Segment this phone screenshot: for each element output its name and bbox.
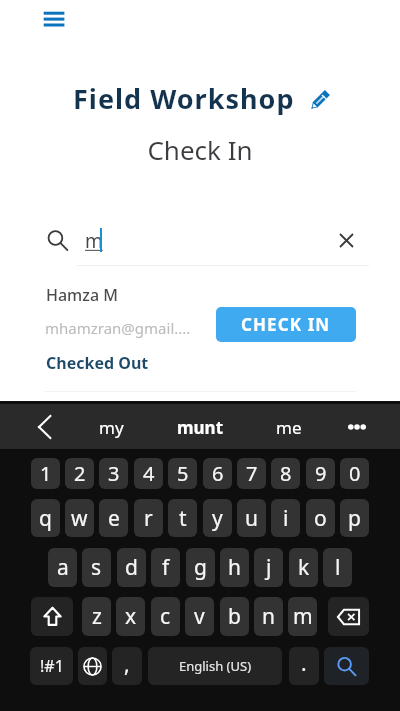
staticText: h	[228, 553, 241, 582]
button[interactable]: .	[289, 647, 319, 685]
staticText: .	[301, 649, 307, 678]
button[interactable]: 7	[237, 458, 266, 489]
button[interactable]: Search	[46, 229, 69, 252]
staticText: b	[228, 602, 241, 631]
staticText: 9	[315, 460, 327, 487]
staticText: !#1	[40, 655, 64, 677]
button[interactable]: Edit	[309, 88, 332, 111]
staticText: x	[125, 602, 137, 631]
button[interactable]: w	[65, 499, 94, 537]
staticText: 1	[40, 460, 52, 487]
button[interactable]: Shift	[31, 597, 73, 636]
button[interactable]: Clear search	[334, 228, 359, 253]
staticText: mhamzran@gmail....	[45, 318, 191, 338]
button[interactable]: me	[253, 407, 325, 447]
staticText: p	[348, 504, 361, 533]
staticText: my	[99, 416, 124, 439]
staticText: t	[179, 504, 187, 533]
button[interactable]: 2	[65, 458, 94, 489]
staticText: l	[335, 553, 341, 582]
button[interactable]: a	[48, 548, 77, 587]
staticText: 7	[246, 460, 258, 487]
button[interactable]: my	[75, 407, 147, 447]
staticText: a	[57, 553, 69, 582]
staticText: d	[125, 553, 138, 582]
staticText: Field Workshop	[73, 80, 295, 117]
button[interactable]: y	[203, 499, 232, 537]
button[interactable]: 9	[306, 458, 335, 489]
button[interactable]: Previous suggestions	[24, 411, 64, 443]
button[interactable]: r	[134, 499, 163, 537]
button[interactable]: z	[82, 597, 111, 636]
staticText: 5	[177, 460, 189, 487]
button[interactable]: q	[31, 499, 60, 537]
button[interactable]: munt	[164, 407, 236, 447]
staticText: o	[314, 504, 327, 533]
button[interactable]: t	[168, 499, 197, 537]
button[interactable]: k	[289, 548, 318, 587]
staticText: 8	[280, 460, 292, 487]
staticText: English (US)	[179, 657, 252, 675]
staticText: n	[262, 602, 275, 631]
button[interactable]: h	[220, 548, 249, 587]
staticText: w	[71, 504, 88, 533]
staticText: v	[194, 602, 205, 631]
staticText: e	[108, 504, 120, 533]
button[interactable]: d	[117, 548, 146, 587]
staticText: m	[293, 602, 313, 631]
button[interactable]: 6	[203, 458, 232, 489]
staticText: 6	[212, 460, 224, 487]
button[interactable]: u	[237, 499, 266, 537]
button[interactable]: s	[82, 548, 111, 587]
staticText: Checked Out	[46, 352, 149, 374]
staticText: k	[298, 553, 310, 582]
button[interactable]: x	[116, 597, 145, 636]
staticText: s	[91, 553, 102, 582]
button[interactable]: o	[306, 499, 335, 537]
button[interactable]: i	[271, 499, 300, 537]
button[interactable]: 5	[168, 458, 197, 489]
button[interactable]: e	[99, 499, 128, 537]
staticText: 0	[349, 460, 361, 487]
staticText: j	[266, 553, 272, 582]
button[interactable]: m	[288, 597, 317, 636]
button[interactable]: !#1	[30, 647, 73, 685]
staticText: r	[144, 504, 153, 533]
button[interactable]: f	[151, 548, 180, 587]
button[interactable]: 3	[99, 458, 128, 489]
staticText: me	[276, 416, 302, 439]
button[interactable]: l	[323, 548, 352, 587]
button[interactable]: g	[186, 548, 215, 587]
button[interactable]: v	[185, 597, 214, 636]
button[interactable]: Backspace	[328, 597, 369, 636]
button[interactable]: b	[220, 597, 249, 636]
button[interactable]: ,	[112, 647, 142, 685]
staticText: CHECK IN	[241, 313, 331, 336]
staticText: Check In	[0, 132, 400, 167]
staticText: m	[85, 228, 103, 254]
button[interactable]: 8	[271, 458, 300, 489]
button[interactable]: Change language	[78, 647, 107, 685]
staticText: y	[212, 504, 223, 533]
staticText: q	[39, 504, 52, 533]
staticText: ,	[124, 650, 130, 679]
button[interactable]: Menu	[32, 2, 74, 44]
button[interactable]: c	[151, 597, 180, 636]
staticText: c	[160, 602, 171, 631]
staticText: Hamza M	[46, 284, 118, 306]
staticText: i	[283, 504, 289, 533]
button[interactable]: n	[254, 597, 283, 636]
button[interactable]: Search	[324, 647, 369, 685]
button[interactable]: CHECK IN	[216, 307, 356, 342]
button[interactable]: 1	[31, 458, 60, 489]
staticText: z	[92, 602, 102, 631]
staticText: g	[194, 553, 207, 582]
staticText: u	[245, 504, 258, 533]
button[interactable]: j	[254, 548, 283, 587]
button[interactable]: More options	[336, 411, 378, 443]
button[interactable]: 4	[134, 458, 163, 489]
button[interactable]: English (US)	[148, 647, 282, 685]
button[interactable]: p	[340, 499, 369, 537]
staticText: 2	[74, 460, 86, 487]
button[interactable]: 0	[340, 458, 369, 489]
